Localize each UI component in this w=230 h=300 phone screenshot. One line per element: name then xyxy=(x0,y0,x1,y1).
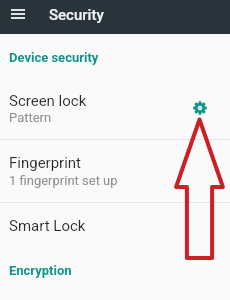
staticText: 1 fingerprint set up xyxy=(9,173,118,188)
button[interactable]: Fingerprint xyxy=(0,140,230,202)
button[interactable]: Screen lock xyxy=(0,80,230,139)
staticText: Security xyxy=(49,6,104,24)
staticText: Device security xyxy=(9,50,99,65)
staticText: Fingerprint xyxy=(9,154,82,172)
staticText: Pattern xyxy=(9,110,52,125)
button: Encryption xyxy=(0,252,230,286)
button[interactable]: Screen lock settings xyxy=(183,91,217,125)
staticText: Smart Lock xyxy=(9,217,86,235)
button[interactable]: Smart Lock xyxy=(0,203,230,251)
staticText: Encryption xyxy=(9,263,72,278)
staticText: Screen lock xyxy=(9,92,87,110)
button[interactable]: Open navigation menu xyxy=(0,0,35,34)
button: Device security xyxy=(0,40,230,74)
